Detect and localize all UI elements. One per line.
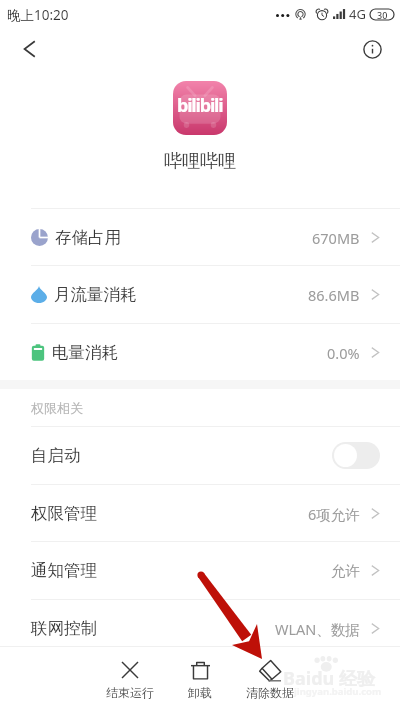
staticText: 通知管理 — [31, 560, 97, 581]
button[interactable]: Info — [358, 35, 386, 63]
staticText: 4G — [349, 5, 366, 23]
staticText: 6项允许 — [308, 504, 360, 524]
staticText: 晚上10:20 — [7, 6, 69, 24]
staticText: 权限管理 — [31, 503, 97, 524]
button[interactable]: 结束运行 — [95, 647, 165, 711]
button[interactable]: 月流量消耗 — [0, 266, 400, 323]
staticText: 联网控制 — [31, 618, 97, 639]
button[interactable]: 自启动 — [0, 427, 400, 484]
staticText: 自启动 — [31, 445, 81, 466]
button[interactable]: 权限管理 — [0, 485, 400, 542]
button[interactable]: 通知管理 — [0, 542, 400, 599]
staticText: 30 — [377, 9, 388, 20]
staticText: 允许 — [331, 562, 360, 580]
staticText: WLAN、数据 — [275, 619, 360, 639]
staticText: 哔哩哔哩 — [164, 150, 236, 173]
button[interactable]: 清除数据 — [235, 647, 305, 711]
button[interactable]: 联网控制 — [0, 600, 400, 657]
staticText: 结束运行 — [106, 685, 154, 700]
staticText: bilibili — [177, 93, 223, 118]
staticText: 月流量消耗 — [54, 284, 137, 305]
staticText: 存储占用 — [55, 227, 121, 248]
staticText: jingyan.baidu.com — [294, 685, 382, 698]
staticText: 电量消耗 — [52, 342, 118, 363]
staticText: 卸载 — [188, 685, 212, 700]
staticText: 0.0% — [327, 343, 360, 363]
button[interactable]: 存储占用 — [0, 209, 400, 266]
staticText: 86.6MB — [308, 285, 360, 305]
button[interactable]: Back — [14, 34, 44, 64]
staticText: 权限相关 — [31, 400, 83, 416]
staticText: 清除数据 — [246, 685, 294, 700]
button[interactable]: 电量消耗 — [0, 324, 400, 381]
button[interactable]: 卸载 — [165, 647, 235, 711]
staticText: Baidu 经验 — [283, 666, 375, 691]
staticText: 670MB — [312, 228, 360, 248]
